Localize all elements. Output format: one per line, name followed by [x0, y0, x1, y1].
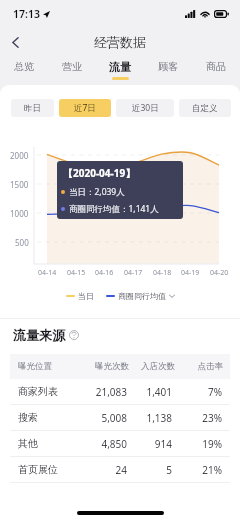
staticText: 近30日 — [132, 102, 159, 114]
button[interactable]: 其他 — [10, 431, 230, 456]
staticText: 04-16 — [95, 268, 114, 278]
button[interactable]: 商品 — [192, 56, 240, 85]
button[interactable]: 近30日 — [116, 99, 174, 117]
staticText: 1500 — [10, 179, 29, 190]
staticText: 500 — [15, 237, 29, 248]
staticText: 04-15 — [67, 268, 86, 278]
staticText: 17:13 — [13, 7, 40, 21]
staticText: 入店次数 — [115, 361, 175, 372]
staticText: 1,401 — [112, 385, 172, 399]
staticText: 曝光位置 — [18, 361, 52, 372]
staticText: 首页展位 — [18, 463, 58, 476]
staticText: 商圈同行均值：1,141人 — [69, 203, 159, 215]
staticText: 自定义 — [192, 103, 218, 114]
staticText: 顾客 — [158, 60, 178, 73]
button[interactable]: 自定义 — [179, 99, 231, 117]
button[interactable]: 营业 — [48, 56, 96, 85]
staticText: 近7日 — [74, 102, 96, 114]
staticText: 经营数据 — [94, 34, 146, 50]
staticText: 其他 — [18, 437, 38, 450]
staticText: 24 — [67, 463, 127, 477]
staticText: 流量 — [109, 60, 131, 74]
staticText: 当日：2,039人 — [69, 186, 125, 198]
button[interactable]: 近7日 — [59, 99, 111, 117]
staticText: 营业 — [62, 60, 82, 73]
staticText: 04-14 — [38, 268, 57, 278]
button[interactable]: 商圈同行均值 — [118, 291, 175, 301]
staticText: 5 — [112, 463, 172, 477]
staticText: 04-20 — [210, 268, 229, 278]
button[interactable]: 昨日 — [11, 99, 54, 117]
staticText: 7% — [162, 385, 222, 399]
staticText: 【2020-04-19】 — [63, 166, 136, 180]
staticText: 04-17 — [124, 268, 143, 278]
button[interactable]: 首页展位 — [10, 457, 230, 482]
staticText: 流量来源 — [13, 327, 65, 343]
staticText: 04-18 — [153, 268, 172, 278]
button[interactable]: 总览 — [0, 56, 48, 85]
staticText: 商圈同行均值 — [118, 291, 166, 301]
staticText: 4,850 — [67, 437, 127, 451]
staticText: 总览 — [14, 60, 34, 73]
button[interactable]: 流量 — [96, 56, 144, 85]
staticText: 5,008 — [67, 411, 127, 425]
staticText: 914 — [112, 437, 172, 451]
staticText: 2000 — [10, 150, 29, 161]
button[interactable]: 搜索 — [10, 405, 230, 430]
staticText: 21,083 — [67, 385, 127, 399]
button[interactable]: 商家列表 — [10, 379, 230, 404]
staticText: 商家列表 — [18, 385, 58, 398]
staticText: 04-19 — [181, 268, 200, 278]
staticText: 19% — [162, 437, 222, 451]
staticText: 曝光次数 — [69, 361, 129, 372]
staticText: 23% — [162, 411, 222, 425]
staticText: 当日 — [78, 291, 94, 301]
staticText: 点击率 — [163, 361, 223, 372]
staticText: 搜索 — [18, 411, 38, 424]
button[interactable]: 顾客 — [144, 56, 192, 85]
staticText: 商品 — [206, 60, 226, 73]
staticText: 1,138 — [112, 411, 172, 425]
staticText: 昨日 — [24, 103, 41, 114]
button[interactable]: Back — [0, 28, 30, 56]
staticText: 21% — [162, 463, 222, 477]
staticText: 1000 — [10, 208, 29, 219]
